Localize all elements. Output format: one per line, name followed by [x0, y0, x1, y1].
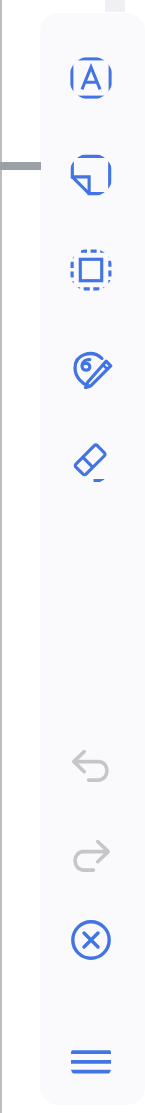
button[interactable]: Eraser: [69, 440, 113, 484]
button[interactable]: Select: [69, 248, 113, 292]
button[interactable]: Undo: [69, 743, 113, 787]
button[interactable]: Clear: [69, 918, 113, 962]
button[interactable]: Draw: [69, 346, 113, 390]
button[interactable]: Text box: [69, 56, 113, 100]
button[interactable]: Sticky note: [69, 153, 113, 197]
button[interactable]: Redo: [69, 833, 113, 877]
button[interactable]: Menu: [69, 1039, 113, 1083]
